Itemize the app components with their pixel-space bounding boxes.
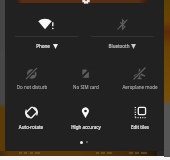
button[interactable]: Wi-Fi <box>8 10 78 48</box>
button[interactable] <box>114 98 166 132</box>
staticText: No SIM card <box>46 84 126 90</box>
staticText: Edit tiles <box>100 124 170 130</box>
button[interactable]: Settings <box>82 0 90 4</box>
button[interactable] <box>60 58 112 92</box>
staticText: Phone <box>3 43 83 49</box>
button[interactable] <box>60 98 112 132</box>
button[interactable] <box>5 98 57 132</box>
staticText: Auto-rotate <box>0 124 71 130</box>
staticText: Do not disturb <box>0 84 72 90</box>
button[interactable] <box>114 58 166 92</box>
staticText: Aeroplane mode <box>100 84 170 90</box>
button[interactable] <box>5 0 164 152</box>
staticText: High accuracy <box>46 124 126 130</box>
button[interactable] <box>6 58 58 92</box>
staticText: Bluetooth <box>79 43 159 49</box>
button[interactable]: Bluetooth <box>90 10 160 48</box>
